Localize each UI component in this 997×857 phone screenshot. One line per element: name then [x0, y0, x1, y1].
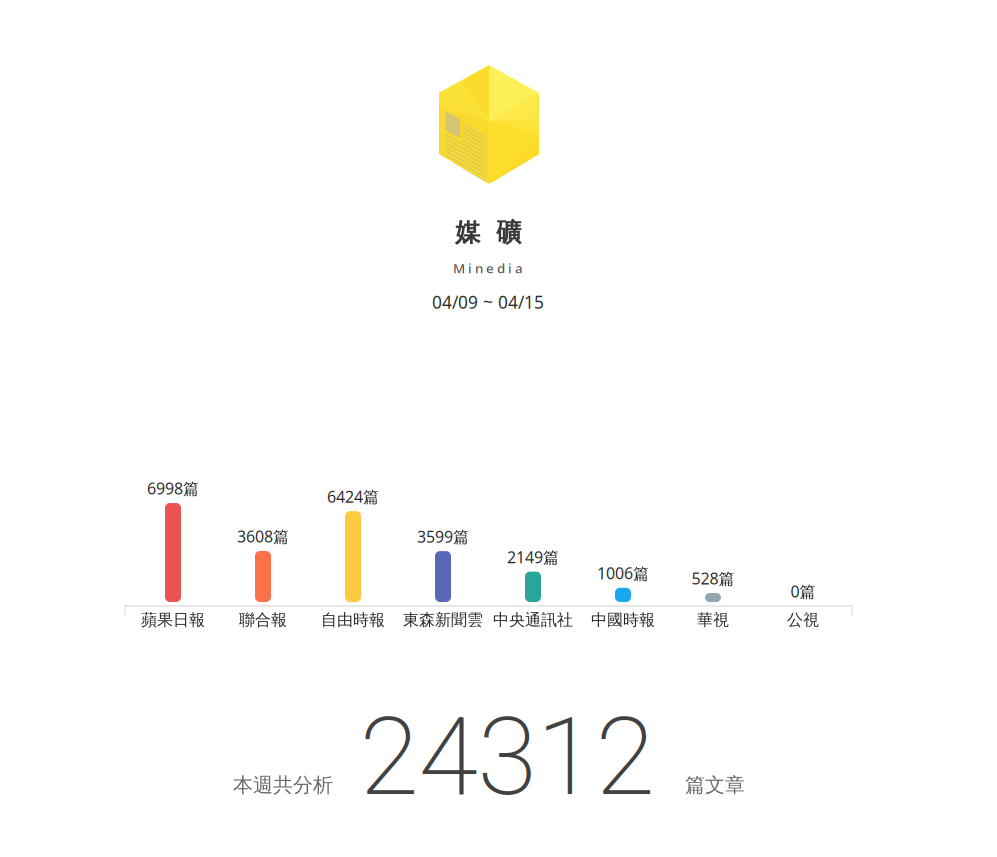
button[interactable]: 媒礦 Minedia — [439, 65, 539, 184]
staticText: 聯合報 — [239, 610, 287, 630]
staticText: 24312 — [359, 694, 654, 820]
staticText: 3608篇 — [237, 526, 289, 547]
staticText: 1006篇 — [597, 562, 649, 584]
button[interactable]: 聯合報 3608 篇 — [218, 481, 308, 602]
button[interactable]: 自由時報 6424 篇 — [308, 481, 398, 602]
staticText: 自由時報 — [321, 610, 385, 630]
button[interactable]: 篇文章 — [685, 773, 745, 797]
staticText: 蘋果日報 — [141, 610, 205, 630]
button[interactable]: 東森新聞雲 — [403, 610, 483, 630]
button[interactable]: 公視 — [787, 610, 819, 630]
staticText: 3599篇 — [417, 526, 469, 547]
staticText: 本週共分析 — [233, 773, 333, 797]
staticText: 0篇 — [790, 581, 815, 602]
staticText: 2149篇 — [507, 546, 559, 568]
button[interactable]: 04/09 ~ 04/15 — [432, 290, 544, 313]
staticText: 6424篇 — [327, 486, 379, 507]
staticText: 04/09 ~ 04/15 — [432, 290, 544, 313]
button[interactable]: 中國時報 — [591, 610, 655, 630]
button[interactable]: 華視 528 篇 — [668, 481, 758, 602]
staticText: 中央通訊社 — [493, 610, 573, 630]
button[interactable]: 東森新聞雲 3599 篇 — [398, 481, 488, 602]
button[interactable]: 中央通訊社 — [493, 610, 573, 630]
button[interactable]: 聯合報 — [239, 610, 287, 630]
staticText: 6998篇 — [147, 478, 199, 499]
button[interactable]: 本週共分析 — [233, 773, 333, 797]
button[interactable]: 中央通訊社 2149 篇 — [488, 481, 578, 602]
staticText: 華視 — [697, 610, 729, 630]
staticText: M i n e d i a — [453, 259, 523, 277]
staticText: 東森新聞雲 — [403, 610, 483, 630]
staticText: 528篇 — [691, 568, 734, 589]
button[interactable]: 華視 — [697, 610, 729, 630]
button[interactable]: 蘋果日報 6998 篇 — [128, 481, 218, 602]
staticText: 篇文章 — [685, 773, 745, 797]
staticText: 公視 — [787, 610, 819, 630]
button[interactable]: 自由時報 — [321, 610, 385, 630]
button[interactable]: 公視 0 篇 — [758, 481, 848, 602]
button[interactable]: 媒 礦 — [453, 217, 523, 277]
staticText: 中國時報 — [591, 610, 655, 630]
staticText: 媒 礦 — [455, 217, 521, 248]
button[interactable]: 24312 篇文章 — [359, 694, 654, 820]
button[interactable]: 蘋果日報 — [141, 610, 205, 630]
button[interactable]: 中國時報 1006 篇 — [578, 481, 668, 602]
